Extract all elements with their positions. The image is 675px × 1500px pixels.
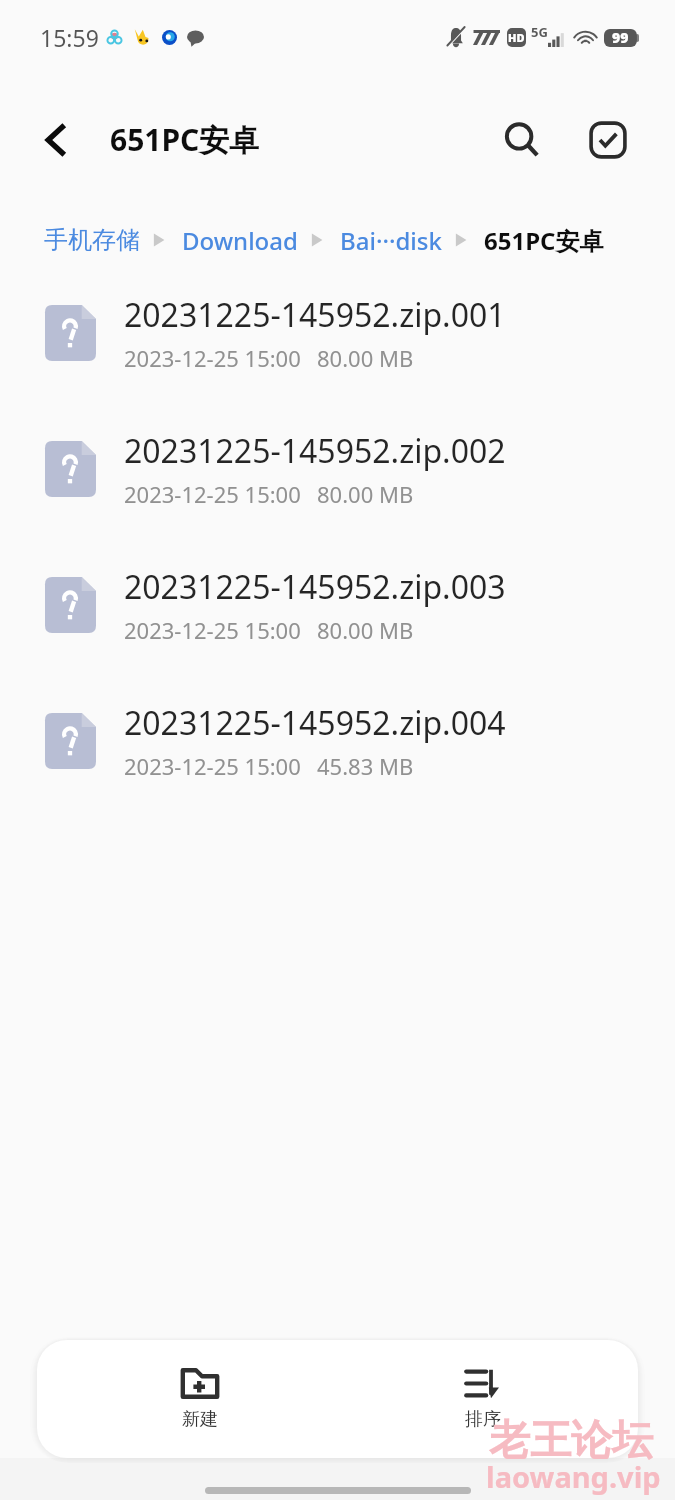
staticText: 15:59 bbox=[40, 22, 99, 53]
staticText: 新建 bbox=[182, 1408, 218, 1431]
button[interactable]: 20231225-145952.zip.004 bbox=[0, 673, 675, 809]
button[interactable]: Search bbox=[494, 112, 550, 168]
staticText: 20231225-145952.zip.003 bbox=[124, 565, 506, 609]
staticText: 20231225-145952.zip.002 bbox=[124, 429, 506, 473]
button[interactable]: 20231225-145952.zip.003 bbox=[0, 537, 675, 673]
staticText: 老王论坛 bbox=[489, 1415, 653, 1467]
button[interactable]: Download bbox=[182, 224, 298, 257]
button[interactable]: 20231225-145952.zip.002 bbox=[0, 401, 675, 537]
staticText: 20231225-145952.zip.001 bbox=[124, 293, 506, 337]
button[interactable]: 651PC安卓 bbox=[484, 224, 604, 257]
staticText: 排序 bbox=[465, 1408, 501, 1431]
staticText: 2023-12-25 15:00 bbox=[124, 751, 301, 781]
staticText: 45.83 MB bbox=[317, 751, 414, 781]
staticText: 5G bbox=[531, 23, 548, 41]
staticText: 80.00 MB bbox=[317, 343, 414, 373]
staticText: 手机存储 bbox=[44, 225, 140, 255]
staticText: 20231225-145952.zip.004 bbox=[124, 701, 506, 745]
staticText: 651PC安卓 bbox=[484, 224, 604, 257]
staticText: 2023-12-25 15:00 bbox=[124, 615, 301, 645]
staticText: Download bbox=[182, 224, 298, 257]
staticText: laowang.vip bbox=[486, 1457, 661, 1496]
button[interactable]: 20231225-145952.zip.001 bbox=[0, 265, 675, 401]
staticText: 80.00 MB bbox=[317, 615, 414, 645]
button[interactable]: 排序 bbox=[347, 1367, 618, 1431]
staticText: 80.00 MB bbox=[317, 479, 414, 509]
staticText: 99 bbox=[612, 28, 629, 47]
button[interactable]: Back bbox=[28, 113, 82, 167]
staticText: Bai···disk bbox=[340, 224, 442, 257]
button[interactable]: 手机存储 bbox=[44, 225, 140, 255]
staticText: 2023-12-25 15:00 bbox=[124, 343, 301, 373]
staticText: HD bbox=[508, 30, 525, 45]
button[interactable]: Bai···disk bbox=[340, 224, 442, 257]
button[interactable]: 新建 bbox=[53, 1367, 347, 1431]
staticText: 651PC安卓 bbox=[110, 119, 260, 160]
staticText: 2023-12-25 15:00 bbox=[124, 479, 301, 509]
button[interactable]: Select all bbox=[580, 112, 636, 168]
